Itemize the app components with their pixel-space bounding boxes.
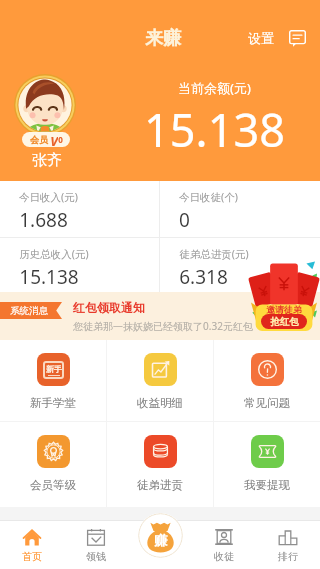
button[interactable]: 今日收徒(个) <box>160 181 320 237</box>
button[interactable]: 历史总收入(元) <box>0 238 159 292</box>
staticText: 抢红包 <box>270 316 299 328</box>
staticText: 红包领取通知 <box>73 300 145 315</box>
staticText: 15.138 <box>144 99 285 160</box>
button[interactable]: Grab red packet <box>251 260 317 331</box>
staticText: 排行 <box>278 550 298 563</box>
button[interactable]: 赚 <box>138 513 183 558</box>
staticText: 来赚 <box>145 27 181 50</box>
button[interactable]: 常见问题 <box>214 340 320 421</box>
button[interactable]: 首页 <box>0 521 64 569</box>
staticText: 系统消息 <box>10 305 48 317</box>
staticText: 今日收入(元) <box>19 190 78 204</box>
staticText: 领钱 <box>86 550 106 563</box>
staticText: 新手 <box>46 364 62 374</box>
staticText: 首页 <box>22 550 42 563</box>
button[interactable]: Messages <box>284 25 310 51</box>
staticText: 15.138 <box>19 264 79 290</box>
button[interactable] <box>14 74 76 136</box>
staticText: 0 <box>179 207 190 233</box>
staticText: 徒弟进贡 <box>137 478 183 492</box>
staticText: 历史总收入(元) <box>19 247 89 261</box>
staticText: 会员 <box>30 134 48 145</box>
staticText: 今日收徒(个) <box>179 190 238 204</box>
button[interactable]: 徒弟进贡 <box>107 422 213 507</box>
staticText: 赚 <box>154 532 167 548</box>
staticText: 我要提现 <box>244 478 290 492</box>
button[interactable]: 收益明细 <box>107 340 213 421</box>
staticText: 您徒弟那一抹妖娆已经领取了0.32元红包 <box>73 319 253 333</box>
staticText: 设置 <box>248 30 274 46</box>
button[interactable]: 我要提现 <box>214 422 320 507</box>
button[interactable]: 排行 <box>256 521 320 569</box>
staticText: 0 <box>58 134 63 145</box>
button[interactable]: 收徒 <box>192 521 256 569</box>
button[interactable]: 新手 <box>0 340 106 421</box>
staticText: 1.688 <box>19 207 68 233</box>
staticText: 收益明细 <box>137 396 183 410</box>
button[interactable]: 设置 <box>244 22 278 54</box>
staticText: 当前余额(元) <box>178 79 251 97</box>
button[interactable]: 会员等级 <box>0 422 106 507</box>
staticText: V <box>50 132 58 147</box>
staticText: 6.318 <box>179 264 228 290</box>
button[interactable]: 会员 <box>22 132 70 147</box>
staticText: 张齐 <box>32 151 62 170</box>
staticText: 邀请徒弟 <box>266 304 302 315</box>
staticText: 徒弟总进贡(元) <box>179 247 249 261</box>
button[interactable]: 领钱 <box>64 521 128 569</box>
button[interactable]: 今日收入(元) <box>0 181 159 237</box>
staticText: 会员等级 <box>30 478 76 492</box>
staticText: 收徒 <box>214 550 234 563</box>
button[interactable]: 系统消息 <box>0 292 320 340</box>
staticText: 常见问题 <box>244 396 290 410</box>
staticText: 新手学堂 <box>30 396 76 410</box>
button[interactable]: 徒弟总进贡(元) <box>160 238 320 292</box>
